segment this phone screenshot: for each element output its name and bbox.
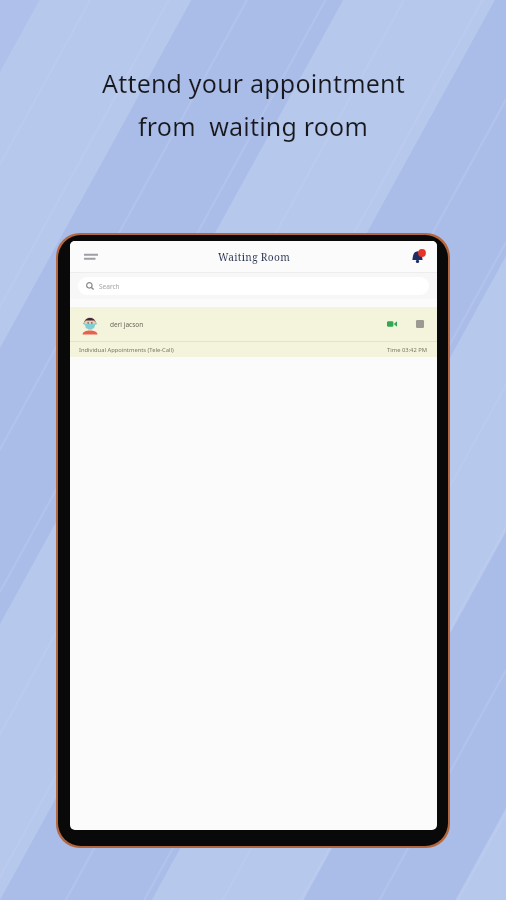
staticText: Attend your appointment [102,66,405,100]
button[interactable]: Start video call [384,316,400,332]
staticText: from waiting room [138,109,368,143]
button[interactable]: Notifications [407,247,427,267]
button[interactable]: Appointment details [412,316,428,332]
staticText: Individual Appointments (Tele-Call) [79,346,174,354]
button[interactable]: deri jacson [70,307,437,357]
button[interactable]: Open navigation menu [80,246,102,268]
staticText: Search [99,282,120,291]
staticText: Time 03:42 PM [387,346,428,354]
staticText: Waiting Room [218,250,290,264]
staticText: deri jacson [110,320,144,329]
button[interactable]: Search [78,277,429,295]
